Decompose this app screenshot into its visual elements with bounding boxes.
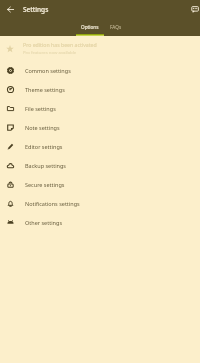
button[interactable]: Common settings — [0, 61, 200, 80]
button[interactable]: Options — [76, 19, 104, 36]
staticText: Secure settings — [25, 181, 65, 188]
button[interactable]: FAQs — [104, 19, 127, 36]
button[interactable]: File settings — [0, 99, 200, 118]
staticText: Pro features now available — [23, 49, 77, 55]
staticText: Options — [81, 24, 99, 30]
button[interactable]: Pro edition has been activated — [0, 36, 200, 61]
button[interactable]: Feedback — [189, 0, 200, 19]
button[interactable]: Note settings — [0, 118, 200, 137]
staticText: FAQs — [110, 24, 122, 30]
button[interactable]: Backup settings — [0, 156, 200, 175]
button[interactable]: Theme settings — [0, 80, 200, 99]
staticText: Backup settings — [25, 162, 66, 169]
staticText: Settings — [23, 5, 49, 14]
staticText: File settings — [25, 105, 56, 112]
button[interactable]: Navigate up — [0, 0, 21, 19]
staticText: Note settings — [25, 124, 60, 131]
staticText: Editor settings — [25, 143, 63, 150]
staticText: Pro edition has been activated — [23, 41, 97, 48]
button[interactable]: Other settings — [0, 213, 200, 232]
button[interactable]: Editor settings — [0, 137, 200, 156]
staticText: Common settings — [25, 67, 71, 74]
button[interactable]: Notifications settings — [0, 194, 200, 213]
staticText: Notifications settings — [25, 200, 80, 207]
button[interactable]: Secure settings — [0, 175, 200, 194]
staticText: Theme settings — [25, 86, 65, 93]
staticText: Other settings — [25, 219, 63, 226]
